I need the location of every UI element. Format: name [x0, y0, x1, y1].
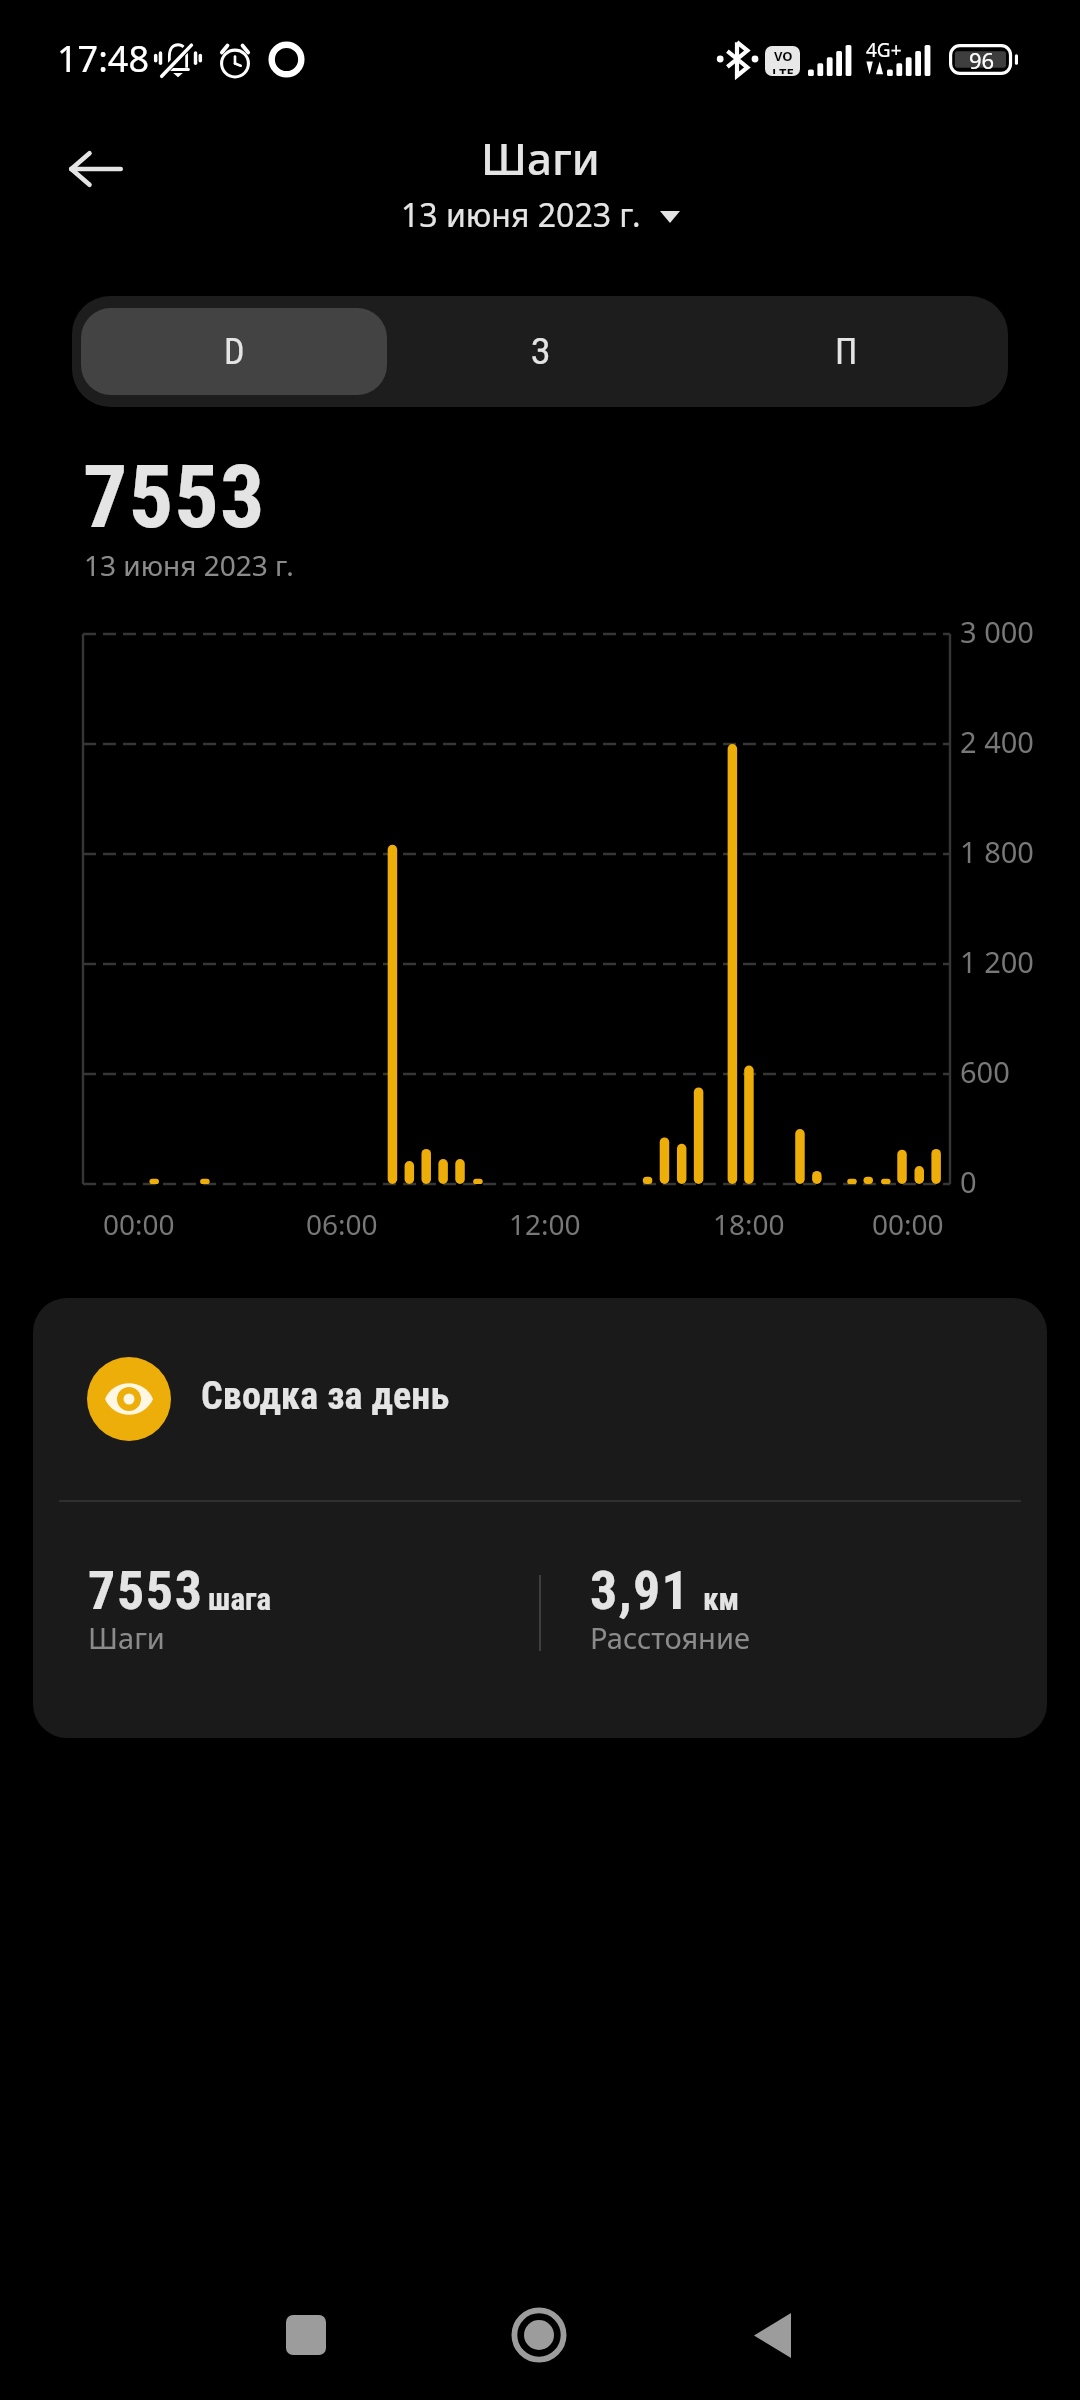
staticText: П: [835, 331, 858, 373]
staticText: 1 800: [960, 832, 1034, 871]
staticText: З: [531, 331, 550, 373]
staticText: 3 000: [960, 612, 1034, 651]
staticText: 4G+: [866, 37, 902, 63]
staticText: 18:00: [713, 1205, 785, 1243]
staticText: 00:00: [872, 1205, 944, 1243]
button[interactable]: П: [693, 308, 999, 395]
staticText: Сводка за день: [201, 1374, 450, 1419]
button[interactable]: D: [81, 308, 387, 395]
staticText: км: [703, 1581, 740, 1617]
staticText: 00:00: [103, 1205, 175, 1243]
staticText: LTE: [772, 64, 794, 74]
staticText: 13 июня 2023 г.: [401, 193, 641, 237]
staticText: 13 июня 2023 г.: [84, 546, 294, 584]
staticText: 0: [960, 1162, 977, 1201]
staticText: Расстояние: [590, 1618, 750, 1657]
button[interactable]: З: [387, 308, 693, 395]
staticText: 2 400: [960, 722, 1034, 761]
button[interactable]: 13 июня 2023 г.: [391, 188, 690, 242]
staticText: 12:00: [509, 1205, 581, 1243]
button[interactable]: Сводка за день: [33, 1298, 1047, 1738]
staticText: D: [224, 331, 245, 373]
staticText: 96: [969, 45, 995, 75]
button[interactable]: Back: [40, 113, 152, 225]
staticText: 7553: [88, 1559, 204, 1622]
staticText: 06:00: [306, 1205, 378, 1243]
button[interactable]: Recents: [246, 2275, 366, 2395]
staticText: 600: [960, 1052, 1010, 1091]
staticText: Шаги: [481, 128, 600, 188]
staticText: VO: [774, 47, 793, 65]
staticText: 7553: [83, 445, 266, 548]
staticText: 1 200: [960, 942, 1034, 981]
staticText: шага: [208, 1581, 272, 1617]
staticText: 17:48: [57, 34, 150, 83]
staticText: 3,91: [590, 1559, 690, 1622]
button[interactable]: Back: [712, 2275, 832, 2395]
staticText: Шаги: [88, 1618, 165, 1657]
button[interactable]: Home: [479, 2275, 599, 2395]
